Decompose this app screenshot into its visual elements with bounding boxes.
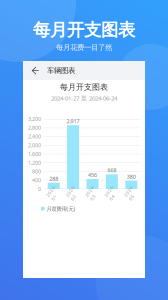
staticText: 月度费用(元) xyxy=(46,205,75,212)
staticText: 2,400 xyxy=(28,133,41,140)
staticText: 2024-03 xyxy=(85,186,98,199)
staticText: 2024-01 xyxy=(47,186,60,199)
staticText: 2024-04 xyxy=(105,186,118,199)
staticText: 车辆图表 xyxy=(47,66,75,75)
staticText: 288 xyxy=(49,175,58,182)
staticText: 1,200 xyxy=(28,159,41,166)
staticText: 每月开支图表 xyxy=(60,82,108,92)
staticText: 380 xyxy=(127,173,136,180)
staticText: 400 xyxy=(32,177,41,184)
staticText: 每月花费一目了然 xyxy=(56,43,112,52)
button[interactable]: Back xyxy=(28,61,41,80)
staticText: 800 xyxy=(32,168,41,175)
staticText: 2024-02 xyxy=(66,186,79,199)
staticText: 0 xyxy=(38,185,41,193)
staticText: 每月开支图表 xyxy=(33,19,135,41)
staticText: 2024-05 xyxy=(124,186,137,199)
staticText: 1,600 xyxy=(28,150,41,158)
staticText: 2,000 xyxy=(28,142,41,149)
staticText: 2,800 xyxy=(28,124,41,131)
staticText: 2,917 xyxy=(67,117,80,125)
staticText: 456 xyxy=(88,171,97,179)
staticText: 2024-01-27 至 2024-06-24 xyxy=(51,94,117,102)
staticText: 3,200 xyxy=(28,115,41,123)
staticText: 668 xyxy=(107,167,116,174)
